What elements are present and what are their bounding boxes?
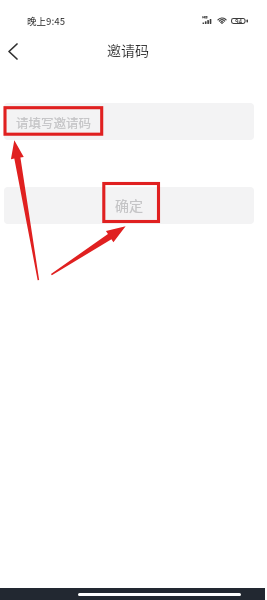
staticText: 94 (235, 17, 243, 25)
button[interactable]: 确定 (4, 187, 254, 224)
staticText: 确定 (115, 195, 143, 215)
staticText: 邀请码 (107, 40, 149, 60)
other: Home (78, 593, 241, 596)
staticText: 晚上9:45 (27, 14, 66, 28)
button[interactable]: Back (0, 35, 29, 67)
button[interactable]: 请填写邀请码 (4, 103, 254, 140)
staticText: 请填写邀请码 (16, 113, 92, 131)
